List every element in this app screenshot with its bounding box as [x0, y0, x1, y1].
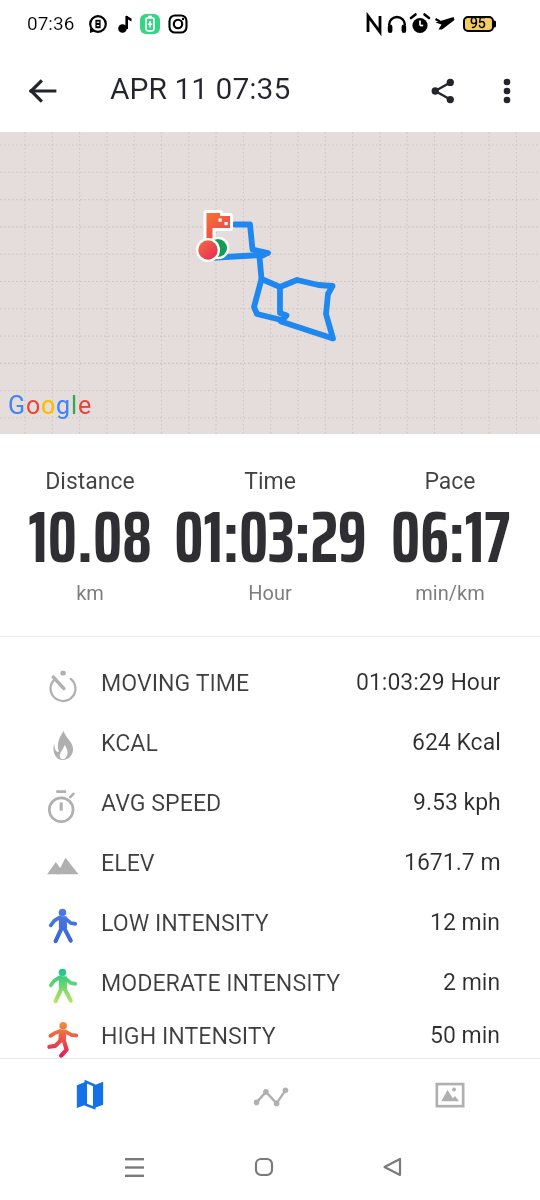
button[interactable]: Share — [415, 63, 471, 119]
staticText: Pace — [424, 468, 476, 495]
button[interactable]: LOW INTENSITY — [0, 892, 540, 952]
staticText: 06:17 — [391, 479, 510, 594]
staticText: 2 min — [443, 969, 501, 996]
staticText: AVG SPEED — [101, 789, 222, 816]
button[interactable]: KCAL — [0, 712, 540, 772]
staticText: 95 — [470, 15, 486, 31]
staticText: 01:03:29 Hour — [356, 669, 501, 696]
staticText: km — [76, 581, 104, 604]
button[interactable]: ELEV — [0, 832, 540, 892]
staticText: 50 min — [430, 1022, 501, 1049]
staticText: 9.53 kph — [413, 789, 501, 816]
staticText: 07:36 — [27, 12, 75, 34]
staticText: MODERATE INTENSITY — [101, 969, 341, 996]
staticText: G — [8, 391, 26, 420]
button[interactable]: Chart — [180, 1059, 360, 1128]
staticText: 10.08 — [28, 479, 152, 594]
button[interactable]: MOVING TIME — [0, 652, 540, 712]
staticText: 1671.7 m — [404, 849, 501, 876]
button[interactable]: Home — [234, 1137, 294, 1197]
button[interactable]: HIGH INTENSITY — [0, 1012, 540, 1058]
staticText: min/km — [415, 581, 485, 604]
button[interactable]: Map — [0, 1059, 180, 1128]
staticText: HIGH INTENSITY — [101, 1022, 276, 1049]
button[interactable]: Recent apps — [104, 1137, 164, 1197]
staticText: MOVING TIME — [101, 669, 250, 696]
staticText: KCAL — [101, 729, 158, 756]
staticText: 01:03:29 — [174, 479, 367, 594]
staticText: o — [26, 391, 41, 420]
staticText: Time — [244, 468, 296, 495]
button[interactable]: AVG SPEED — [0, 772, 540, 832]
button[interactable]: Back — [362, 1137, 422, 1197]
staticText: o — [41, 391, 56, 420]
staticText: e — [78, 391, 92, 420]
staticText: APR 11 07:35 — [110, 71, 291, 106]
button[interactable]: G — [0, 132, 540, 434]
staticText: Distance — [45, 468, 135, 495]
staticText: g — [56, 391, 71, 420]
staticText: Hour — [248, 581, 292, 604]
staticText: 624 Kcal — [412, 729, 501, 756]
staticText: LOW INTENSITY — [101, 909, 269, 936]
button[interactable]: Back — [14, 62, 72, 120]
staticText: l — [71, 391, 78, 420]
button[interactable]: Photos — [360, 1059, 540, 1128]
button[interactable]: More options — [479, 63, 535, 119]
staticText: 12 min — [430, 909, 501, 936]
button[interactable]: MODERATE INTENSITY — [0, 952, 540, 1012]
staticText: ELEV — [101, 849, 155, 876]
